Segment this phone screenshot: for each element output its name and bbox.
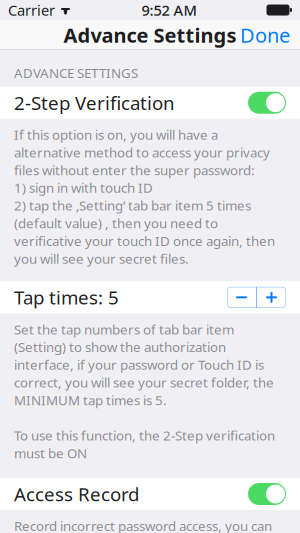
- staticText: Access Record: [14, 482, 139, 506]
- staticText: Set the tap numbers of tab bar item (Set…: [14, 320, 275, 462]
- button[interactable]: Increase: [257, 287, 286, 308]
- staticText: ADVANCE SETTINGS: [14, 64, 138, 82]
- staticText: Done: [240, 22, 290, 48]
- staticText: If this option is on, you will have a al…: [14, 126, 275, 267]
- button[interactable]: Done: [230, 16, 300, 54]
- button[interactable]: Toggle: [248, 483, 286, 505]
- staticText: Record incorrect password access, you ca…: [14, 517, 272, 533]
- staticText: 9:52 AM: [141, 0, 196, 20]
- staticText: Tap times: 5: [14, 285, 119, 310]
- button[interactable]: Decrease: [227, 287, 256, 308]
- staticText: Carrier: [8, 0, 55, 20]
- button[interactable]: Toggle: [248, 92, 286, 114]
- staticText: 2-Step Verification: [14, 90, 175, 115]
- staticText: Advance Settings: [63, 22, 236, 48]
